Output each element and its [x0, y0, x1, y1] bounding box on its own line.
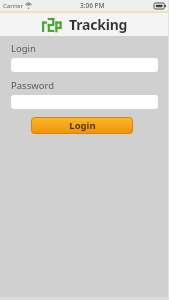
button[interactable]: Login [31, 117, 133, 134]
staticText: Password [11, 79, 54, 92]
staticText: Login [11, 42, 36, 55]
staticText: Tracking [69, 15, 128, 34]
staticText: Login [69, 119, 96, 132]
staticText: Carrier [3, 2, 23, 10]
staticText: 3:06 PM [80, 1, 105, 10]
